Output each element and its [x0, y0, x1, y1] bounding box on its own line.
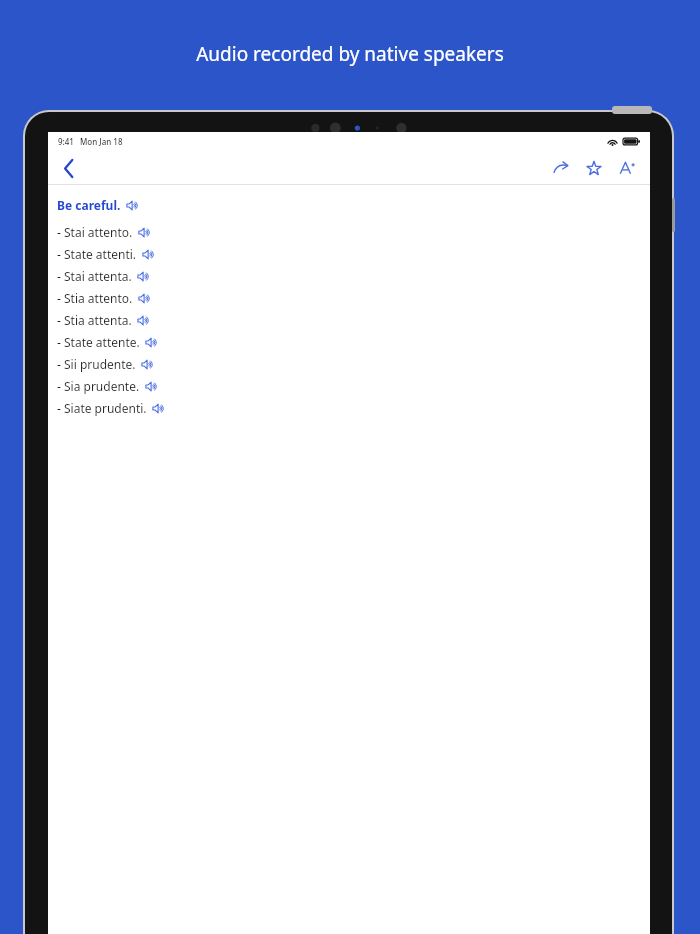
button[interactable]: Share	[546, 153, 576, 183]
button[interactable]: - Stia attenta.	[57, 309, 150, 331]
staticText: 9:41	[58, 136, 74, 147]
staticText: - State attenti.	[57, 246, 137, 262]
staticText: - Stai attento.	[57, 224, 133, 240]
staticText: - Sia prudente.	[57, 378, 140, 394]
staticText: - Siate prudenti.	[57, 400, 147, 416]
staticText: - Stia attenta.	[57, 312, 132, 328]
button[interactable]: - Stia attento.	[57, 287, 151, 309]
staticText: - State attente.	[57, 334, 140, 350]
other: Play audio	[138, 292, 151, 305]
button[interactable]: - Stai attenta.	[57, 265, 150, 287]
staticText: - Sii prudente.	[57, 356, 136, 372]
button[interactable]: - State attenti.	[57, 243, 155, 265]
button[interactable]: - Siate prudenti.	[57, 397, 165, 419]
other: Play audio	[145, 380, 158, 393]
other: Play audio	[137, 314, 150, 327]
staticText: Audio recorded by native speakers	[0, 41, 700, 67]
other: Play audio	[137, 270, 150, 283]
other: Play audio	[152, 402, 165, 415]
button[interactable]: Back	[51, 151, 85, 185]
button[interactable]: - State attente.	[57, 331, 158, 353]
staticText: - Stai attenta.	[57, 268, 132, 284]
staticText: Mon Jan 18	[80, 136, 123, 147]
button[interactable]: Favorite	[579, 153, 609, 183]
staticText: - Stia attento.	[57, 290, 133, 306]
button[interactable]: Be careful.	[57, 197, 139, 213]
other: Play audio	[138, 226, 151, 239]
button[interactable]: - Sia prudente.	[57, 375, 158, 397]
other: Play audio	[126, 199, 139, 212]
other: Play audio	[141, 358, 154, 371]
other: Play audio	[145, 336, 158, 349]
other: Play audio	[142, 248, 155, 261]
button[interactable]: Text size	[612, 153, 642, 183]
staticText: Be careful.	[57, 197, 121, 213]
button[interactable]: - Stai attento.	[57, 221, 151, 243]
button[interactable]: - Sii prudente.	[57, 353, 154, 375]
